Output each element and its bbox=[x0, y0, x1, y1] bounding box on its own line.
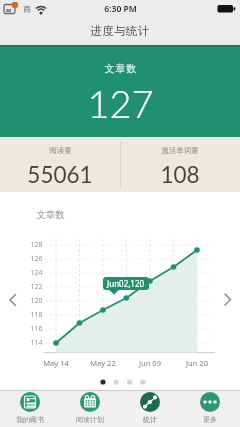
staticText: 商 bbox=[23, 4, 31, 14]
button[interactable] bbox=[216, 288, 238, 312]
button[interactable]: 我的藏书 bbox=[0, 391, 60, 427]
staticText: 108 bbox=[160, 161, 200, 188]
button[interactable]: Jun02,120 bbox=[103, 277, 149, 290]
staticText: 6:30 PM bbox=[104, 3, 137, 15]
button[interactable]: 更多 bbox=[180, 391, 240, 427]
staticText: May 22 bbox=[90, 358, 116, 368]
staticText: 124 bbox=[30, 268, 43, 278]
staticText: May 14 bbox=[43, 358, 69, 368]
staticText: 122 bbox=[30, 282, 43, 292]
button[interactable] bbox=[120, 137, 240, 192]
staticText: 阅读量 bbox=[49, 146, 72, 155]
staticText: 文章数 bbox=[104, 62, 137, 75]
staticText: 55061 bbox=[27, 161, 93, 188]
staticText: Jun 09 bbox=[139, 358, 161, 368]
button[interactable]: 阅读计划 bbox=[60, 391, 120, 427]
staticText: 118 bbox=[30, 310, 43, 320]
staticText: 阅读计划 bbox=[76, 415, 104, 424]
staticText: 120 bbox=[30, 296, 43, 306]
staticText: 激活单词量 bbox=[161, 146, 199, 155]
button[interactable] bbox=[0, 137, 120, 192]
staticText: 文章数 bbox=[36, 209, 65, 221]
staticText: 更多 bbox=[203, 415, 217, 424]
staticText: 我的藏书 bbox=[16, 415, 44, 424]
staticText: Jun 20 bbox=[186, 358, 208, 368]
staticText: 统计 bbox=[143, 415, 157, 424]
staticText: 127 bbox=[87, 80, 154, 120]
staticText: 116 bbox=[30, 324, 43, 334]
staticText: 128 bbox=[30, 240, 43, 250]
staticText: 114 bbox=[30, 338, 43, 348]
button[interactable]: 统计 bbox=[120, 391, 180, 427]
staticText: 进度与统计 bbox=[90, 24, 150, 38]
button[interactable] bbox=[2, 288, 24, 312]
staticText: Jun02,120 bbox=[107, 278, 145, 289]
staticText: 126 bbox=[30, 254, 43, 264]
